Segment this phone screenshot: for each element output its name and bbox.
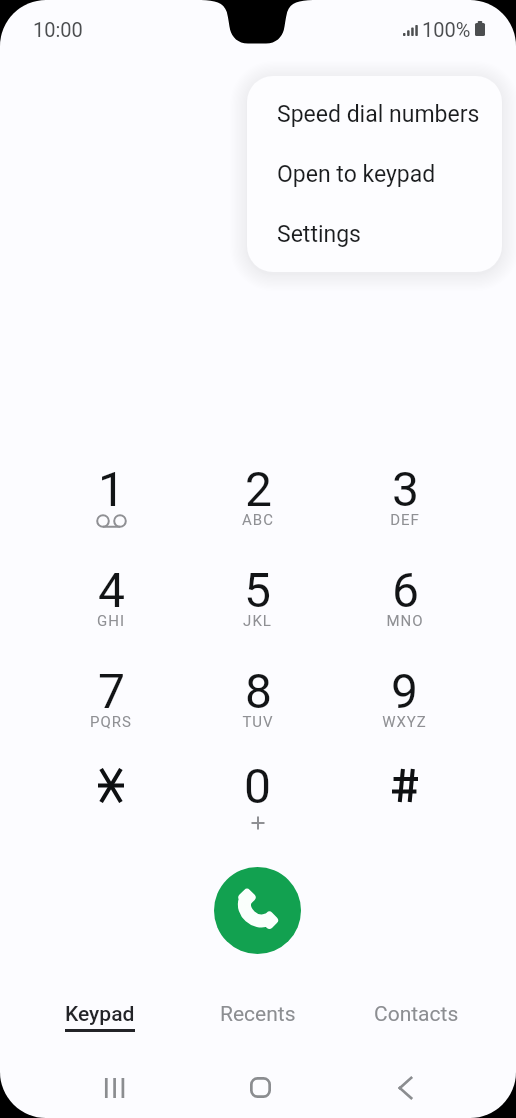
- staticText: Contacts: [374, 1002, 459, 1027]
- staticText: 3: [392, 461, 419, 517]
- staticText: 1: [98, 461, 125, 517]
- staticText: 2: [245, 461, 272, 517]
- staticText: 4: [98, 562, 125, 618]
- staticText: MNO: [386, 612, 424, 630]
- button[interactable]: Call: [214, 867, 301, 954]
- button[interactable]: Recents: [179, 1002, 337, 1044]
- button[interactable]: Speed dial numbers: [247, 84, 502, 144]
- button[interactable]: 1: [38, 461, 184, 562]
- button[interactable]: Keypad: [21, 1002, 179, 1044]
- staticText: WXYZ: [382, 713, 427, 731]
- staticText: Keypad: [65, 1002, 135, 1027]
- button[interactable]: 0: [184, 758, 331, 859]
- staticText: Open to keypad: [277, 161, 436, 188]
- staticText: 9: [391, 663, 418, 719]
- button[interactable]: 3: [331, 461, 478, 562]
- staticText: 5: [244, 562, 271, 618]
- staticText: 8: [245, 663, 272, 719]
- staticText: 7: [98, 663, 125, 719]
- staticText: Speed dial numbers: [277, 101, 480, 128]
- button[interactable]: Home: [217, 1059, 303, 1116]
- staticText: 10:00: [33, 18, 83, 41]
- button[interactable]: Recent apps: [72, 1059, 158, 1116]
- staticText: Recents: [220, 1002, 296, 1027]
- button[interactable]: Back: [362, 1059, 448, 1116]
- button[interactable]: [331, 758, 478, 859]
- button[interactable]: 8: [184, 663, 331, 764]
- staticText: 0: [244, 758, 271, 814]
- button[interactable]: 7: [38, 663, 184, 764]
- button[interactable]: 5: [184, 562, 331, 663]
- button[interactable]: Open to keypad: [247, 144, 502, 204]
- button[interactable]: 9: [331, 663, 478, 764]
- staticText: TUV: [242, 713, 274, 731]
- staticText: 100%: [422, 18, 471, 41]
- staticText: Settings: [277, 221, 361, 248]
- button[interactable]: Contacts: [337, 1002, 495, 1044]
- staticText: DEF: [390, 511, 420, 529]
- staticText: 6: [392, 562, 419, 618]
- button[interactable]: 2: [184, 461, 331, 562]
- staticText: PQRS: [90, 713, 132, 731]
- staticText: ABC: [242, 511, 274, 529]
- button[interactable]: [38, 758, 184, 859]
- button[interactable]: 6: [331, 562, 478, 663]
- staticText: GHI: [97, 612, 125, 630]
- button[interactable]: Settings: [247, 204, 502, 264]
- button[interactable]: 4: [38, 562, 184, 663]
- staticText: JKL: [243, 612, 272, 630]
